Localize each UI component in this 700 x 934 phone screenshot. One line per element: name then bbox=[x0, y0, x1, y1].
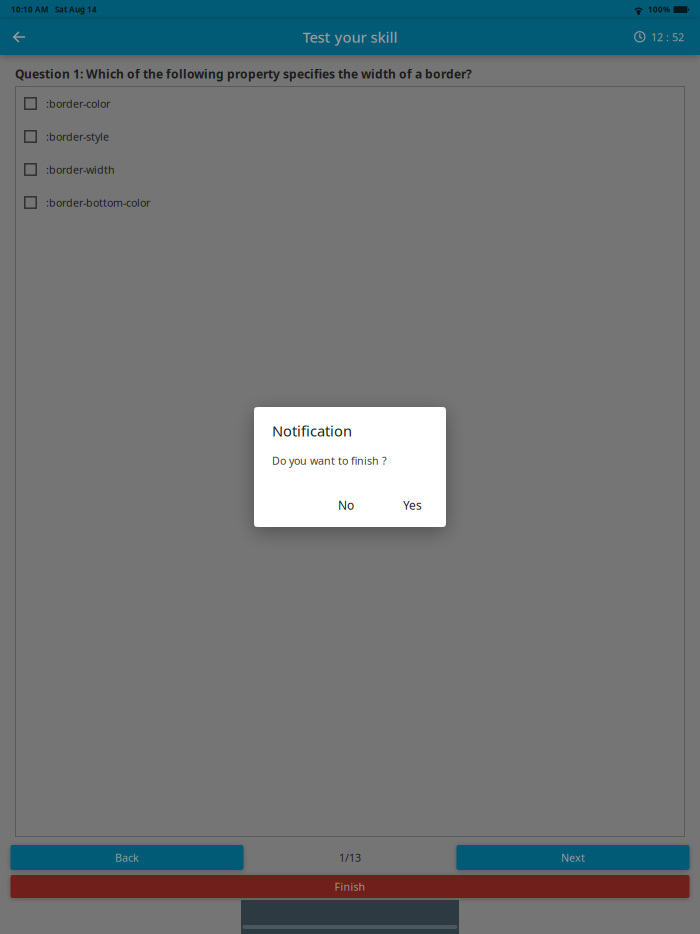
staticText: Yes bbox=[403, 497, 422, 513]
button[interactable]: Time remaining 12:52 bbox=[634, 19, 700, 55]
staticText: 12 : 52 bbox=[651, 30, 684, 44]
button[interactable]: :border-style bbox=[15, 120, 685, 153]
button[interactable]: :border-color bbox=[15, 87, 685, 120]
staticText: :border-style bbox=[46, 129, 109, 144]
staticText: Do you want to finish ? bbox=[272, 453, 387, 468]
staticText: :border-bottom-color bbox=[46, 195, 150, 210]
staticText: 100% bbox=[648, 4, 670, 15]
staticText: :border-color bbox=[46, 96, 110, 111]
button[interactable]: :border-width bbox=[15, 153, 685, 186]
button[interactable]: Yes bbox=[394, 494, 431, 516]
staticText: Question 1: Which of the following prope… bbox=[15, 66, 472, 82]
button[interactable]: Finish bbox=[10, 875, 689, 898]
staticText: 10:10 AM bbox=[11, 4, 49, 15]
staticText: Sat Aug 14 bbox=[55, 4, 97, 15]
staticText: Notification bbox=[272, 421, 352, 440]
staticText: Test your skill bbox=[302, 27, 397, 47]
staticText: No bbox=[338, 497, 354, 513]
button[interactable]: Back bbox=[0, 19, 39, 55]
button[interactable]: :border-bottom-color bbox=[15, 186, 685, 219]
staticText: Next bbox=[561, 850, 585, 865]
button[interactable]: No bbox=[329, 494, 363, 516]
button[interactable]: Next bbox=[456, 845, 689, 870]
button[interactable]: Back bbox=[10, 845, 243, 870]
staticText: Back bbox=[115, 850, 139, 865]
staticText: :border-width bbox=[46, 162, 115, 177]
staticText: Finish bbox=[334, 879, 365, 894]
staticText: 1/13 bbox=[339, 850, 361, 865]
